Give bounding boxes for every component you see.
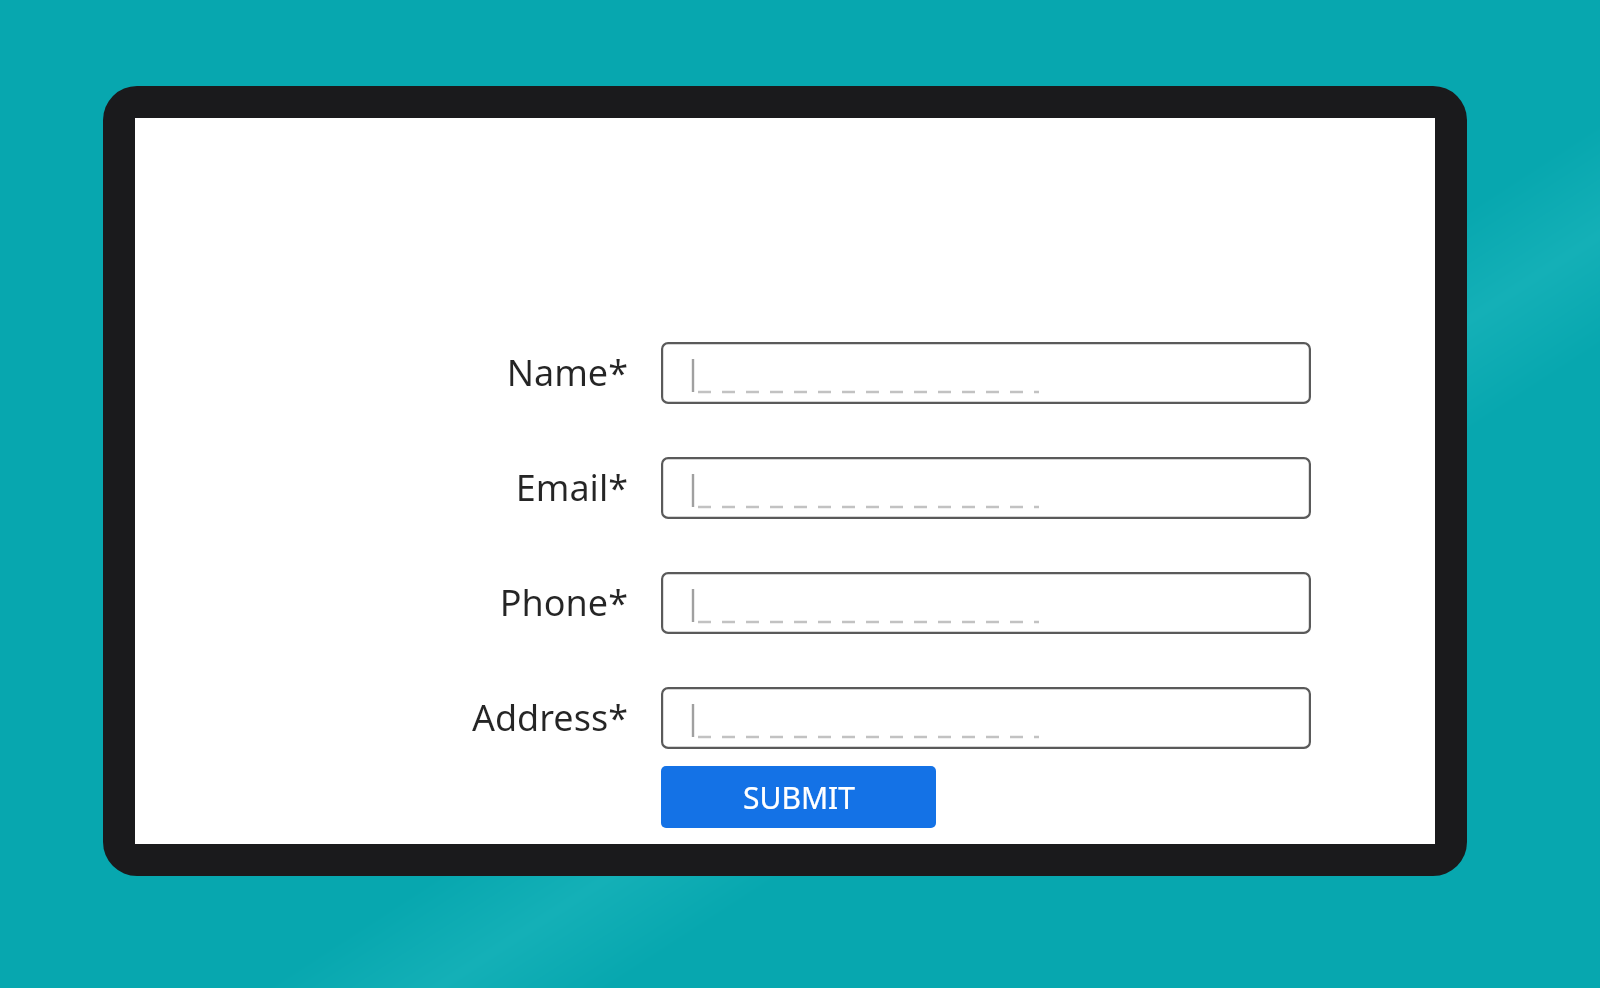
button[interactable]: SUBMIT [661,766,936,828]
button[interactable]: Name* [328,334,628,410]
staticText: Address* [471,693,628,742]
staticText: SUBMIT [743,777,855,818]
staticText: Phone* [499,578,628,627]
button[interactable]: Address* input [661,687,1311,749]
button[interactable]: Email* [328,449,628,525]
staticText: Name* [506,348,628,397]
staticText: Email* [515,463,628,512]
button[interactable]: Phone* input [661,572,1311,634]
button[interactable]: Email* input [661,457,1311,519]
button[interactable]: Address* [328,679,628,755]
button[interactable]: Name* input [661,342,1311,404]
button[interactable]: Phone* [328,564,628,640]
